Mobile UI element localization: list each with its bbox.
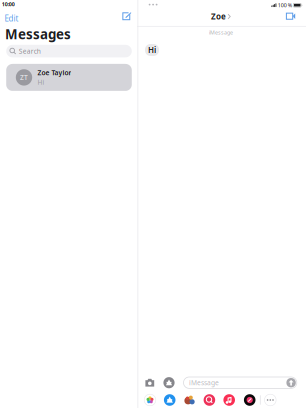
staticText: 100 % — [278, 2, 292, 9]
button[interactable]: ZT — [6, 64, 132, 91]
button[interactable]: App Store — [162, 392, 177, 408]
button[interactable]: Music — [221, 392, 237, 408]
staticText: Zoe Taylor — [37, 68, 71, 77]
button[interactable]: Photos — [142, 392, 158, 408]
staticText: Hi — [148, 45, 156, 55]
button[interactable]: Apps — [160, 374, 178, 391]
button[interactable]: Compose — [118, 9, 135, 23]
staticText: iMessage — [209, 29, 233, 36]
button[interactable]: Send — [286, 378, 296, 387]
staticText: Zoe — [211, 11, 226, 22]
staticText: iMessage — [189, 378, 219, 387]
button[interactable]: Edit — [0, 9, 23, 28]
staticText: Edit — [4, 13, 18, 24]
button[interactable]: More apps — [262, 392, 278, 408]
button[interactable]: Camera — [142, 375, 158, 390]
staticText: ZT — [20, 73, 28, 82]
staticText: Search — [19, 47, 41, 56]
staticText: 10:00 — [2, 1, 15, 8]
staticText: Hi — [37, 78, 44, 87]
staticText: Messages — [5, 25, 71, 43]
button[interactable]: Memoji — [182, 392, 197, 408]
button[interactable]: Fitness — [242, 392, 257, 408]
button[interactable]: Images — [202, 392, 217, 408]
button[interactable]: FaceTime — [282, 8, 300, 24]
button[interactable]: Multitasking controls — [145, 0, 161, 9]
button[interactable]: Zoe — [208, 8, 234, 25]
